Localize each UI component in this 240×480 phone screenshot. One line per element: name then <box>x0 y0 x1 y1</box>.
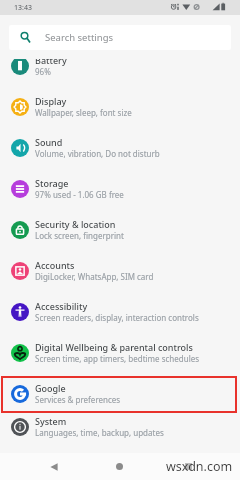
staticText: Security & location <box>35 218 116 230</box>
button[interactable]: Accessibility <box>0 291 240 332</box>
button[interactable]: Google <box>0 373 240 414</box>
button[interactable]: Search settings <box>9 25 231 50</box>
button[interactable]: Display <box>0 86 240 127</box>
staticText: 13:43 <box>14 3 32 13</box>
staticText: Wallpaper, sleep, font size <box>35 107 132 118</box>
button[interactable]: Storage <box>0 168 240 209</box>
staticText: Lock screen, fingerprint <box>35 230 124 241</box>
staticText: 97% used - 1.06 GB free <box>35 189 124 200</box>
button[interactable]: Digital Wellbeing & parental controls <box>0 332 240 373</box>
staticText: Accessibility <box>35 300 88 312</box>
staticText: 96% <box>35 66 51 77</box>
staticText: Storage <box>35 177 69 189</box>
button[interactable]: Accounts <box>0 250 240 291</box>
staticText: Languages, time, backup, updates <box>35 427 164 438</box>
staticText: Digital Wellbeing & parental controls <box>35 341 193 353</box>
button[interactable]: Back <box>41 454 66 479</box>
staticText: Services & preferences <box>35 394 121 405</box>
button[interactable]: Security & location <box>0 209 240 250</box>
staticText: DigiLocker, WhatsApp, SIM card <box>35 271 154 282</box>
staticText: Sound <box>35 136 63 148</box>
staticText: Screen readers, display, interaction con… <box>35 312 199 323</box>
button[interactable]: Recents <box>176 454 201 479</box>
button[interactable]: Battery <box>0 59 240 86</box>
button[interactable]: Sound <box>0 127 240 168</box>
staticText: Google <box>35 382 66 394</box>
button[interactable]: Home <box>107 454 132 479</box>
staticText: Volume, vibration, Do not disturb <box>35 148 160 159</box>
staticText: Screen time, app timers, bedtime schedul… <box>35 353 200 364</box>
staticText: wsxdn.com <box>166 458 233 475</box>
staticText: Display <box>35 95 67 107</box>
button[interactable]: System <box>0 414 240 439</box>
staticText: Search settings <box>45 31 114 44</box>
staticText: Accounts <box>35 259 75 271</box>
staticText: Battery <box>35 59 67 66</box>
staticText: System <box>35 415 67 427</box>
